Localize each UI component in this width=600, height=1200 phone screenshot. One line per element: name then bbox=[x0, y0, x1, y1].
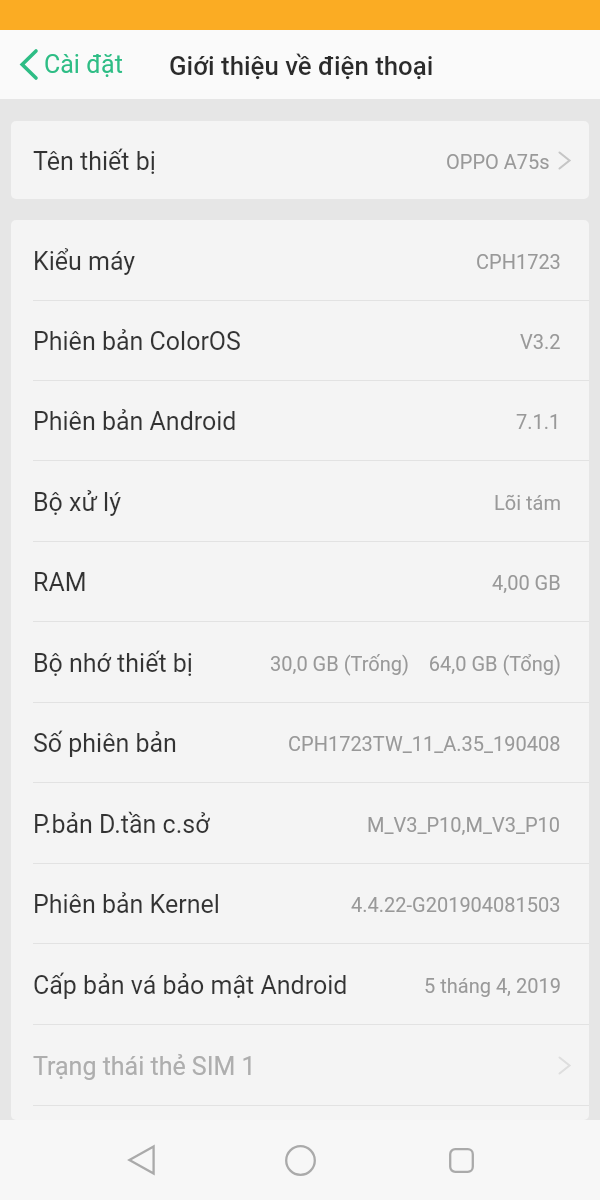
staticText: Phiên bản Android bbox=[33, 407, 237, 436]
button[interactable]: Home bbox=[272, 1132, 328, 1188]
button[interactable]: Trạng thái thẻ SIM 1 bbox=[11, 1025, 589, 1105]
staticText: OPPO A75s bbox=[446, 150, 550, 173]
staticText: M_V3_P10,M_V3_P10 bbox=[367, 813, 561, 836]
button[interactable]: Bộ xử lý bbox=[11, 461, 589, 541]
staticText: Kiểu máy bbox=[33, 247, 136, 276]
staticText: CPH1723TW_11_A.35_190408 bbox=[288, 732, 561, 755]
button[interactable]: Phiên bản ColorOS bbox=[11, 301, 589, 380]
staticText: 4,00 GB bbox=[492, 571, 561, 594]
staticText: Số phiên bản bbox=[33, 729, 177, 758]
button[interactable]: Kiểu máy bbox=[11, 220, 589, 300]
button[interactable]: Recent apps bbox=[433, 1132, 489, 1188]
staticText: Phiên bản ColorOS bbox=[33, 327, 241, 356]
staticText: 4.4.22-G201904081503 bbox=[351, 893, 561, 916]
staticText: Phiên bản Kernel bbox=[33, 890, 220, 919]
staticText: P.bản D.tần c.sở bbox=[33, 810, 210, 839]
button[interactable]: Bộ nhớ thiết bị bbox=[11, 622, 589, 702]
button[interactable]: Cài đặt bbox=[0, 41, 137, 88]
staticText: Trạng thái thẻ SIM 1 bbox=[33, 1052, 256, 1081]
staticText: 30,0 GB (Trống) 64,0 GB (Tổng) bbox=[270, 652, 561, 675]
staticText: Bộ nhớ thiết bị bbox=[33, 649, 193, 678]
staticText: Lõi tám bbox=[494, 491, 561, 514]
staticText: Cài đặt bbox=[44, 50, 123, 79]
staticText: Bộ xử lý bbox=[33, 488, 122, 517]
button[interactable]: RAM bbox=[11, 542, 589, 621]
button[interactable]: Back bbox=[113, 1132, 169, 1188]
button[interactable]: Phiên bản Kernel bbox=[11, 864, 589, 943]
button[interactable]: Số phiên bản bbox=[11, 703, 589, 782]
staticText: Cấp bản vá bảo mật Android bbox=[33, 971, 348, 1000]
button[interactable]: P.bản D.tần c.sở bbox=[11, 783, 589, 863]
button[interactable]: Phiên bản Android bbox=[11, 381, 589, 460]
button[interactable]: Cấp bản vá bảo mật Android bbox=[11, 944, 589, 1024]
staticText: V3.2 bbox=[520, 330, 561, 353]
button[interactable]: Tên thiết bị bbox=[11, 121, 589, 199]
staticText: 5 tháng 4, 2019 bbox=[424, 974, 561, 997]
staticText: RAM bbox=[33, 568, 87, 597]
staticText: 7.1.1 bbox=[516, 410, 561, 433]
staticText: Tên thiết bị bbox=[33, 147, 156, 176]
staticText: CPH1723 bbox=[476, 250, 561, 273]
staticText: Giới thiệu về điện thoại bbox=[169, 51, 434, 81]
